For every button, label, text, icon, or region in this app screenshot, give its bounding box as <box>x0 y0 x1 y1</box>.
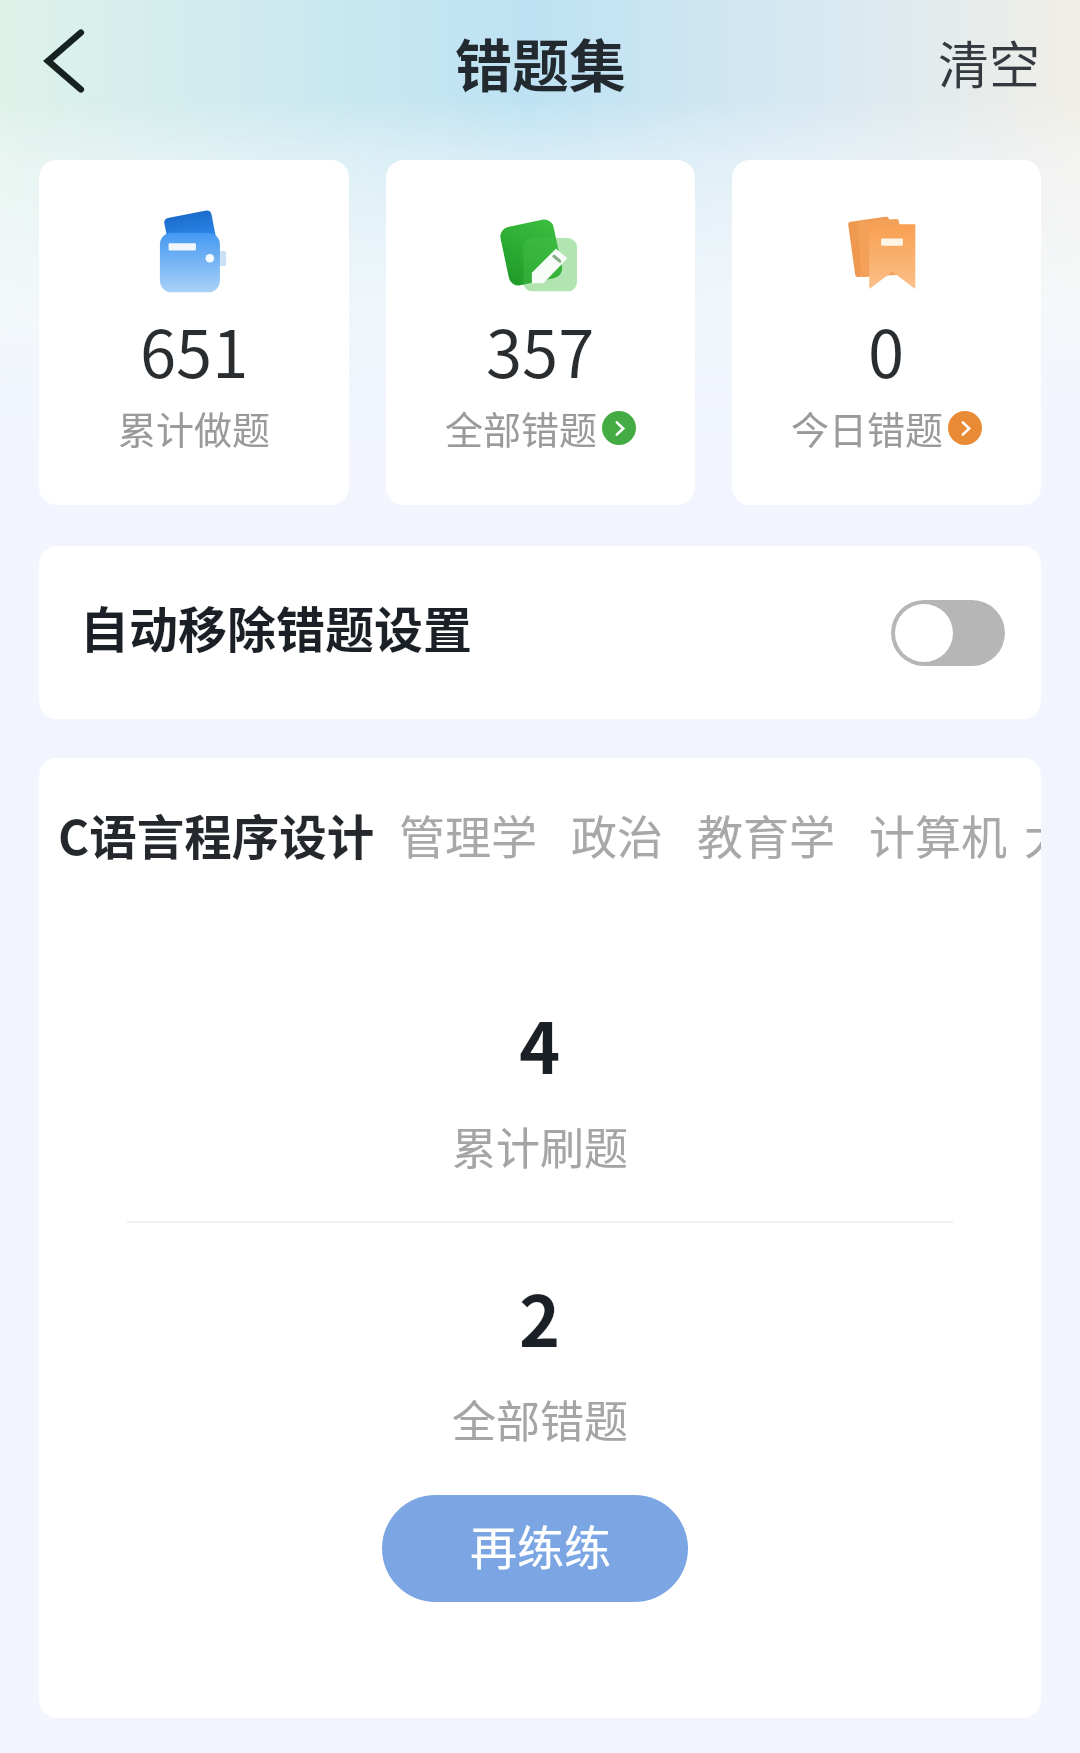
button[interactable]: Back <box>31 28 97 94</box>
button[interactable]: 清空 <box>912 10 1080 112</box>
button[interactable]: 计算机 <box>852 791 1007 878</box>
staticText: 全部错题 <box>445 400 598 455</box>
button[interactable]: 政治 <box>554 791 680 878</box>
staticText: 2 <box>519 1266 561 1367</box>
button[interactable]: 651 <box>39 160 349 505</box>
button[interactable]: Toggle auto remove wrong questions <box>891 600 1005 666</box>
button[interactable]: C语言程序设计 <box>41 790 382 879</box>
staticText: 全部错题 <box>452 1387 628 1451</box>
staticText: 错题集 <box>455 21 626 104</box>
staticText: 651 <box>140 303 249 397</box>
staticText: 教育学 <box>697 801 835 868</box>
button[interactable]: 再练练 <box>382 1495 688 1602</box>
staticText: 357 <box>486 303 595 397</box>
staticText: 0 <box>868 303 905 397</box>
staticText: 自动移除错题设置 <box>80 591 473 662</box>
staticText: 清空 <box>938 25 1041 99</box>
button[interactable]: 管理学 <box>382 791 554 878</box>
button[interactable]: 教育学 <box>680 791 852 878</box>
staticText: 大数据 <box>1024 801 1041 868</box>
staticText: 再练练 <box>470 1510 611 1578</box>
button[interactable]: 357 <box>386 160 695 505</box>
staticText: 政治 <box>571 801 663 868</box>
staticText: 管理学 <box>399 801 537 868</box>
staticText: 今日错题 <box>791 400 944 455</box>
button[interactable]: 0 <box>732 160 1041 505</box>
button[interactable]: 大数据 <box>1007 791 1041 878</box>
staticText: 累计刷题 <box>452 1114 628 1178</box>
button[interactable]: 自动移除错题设置 <box>39 546 1041 719</box>
staticText: C语言程序设计 <box>58 800 375 869</box>
staticText: 累计做题 <box>118 400 271 455</box>
staticText: 4 <box>519 993 561 1094</box>
staticText: 计算机 <box>869 801 1007 868</box>
